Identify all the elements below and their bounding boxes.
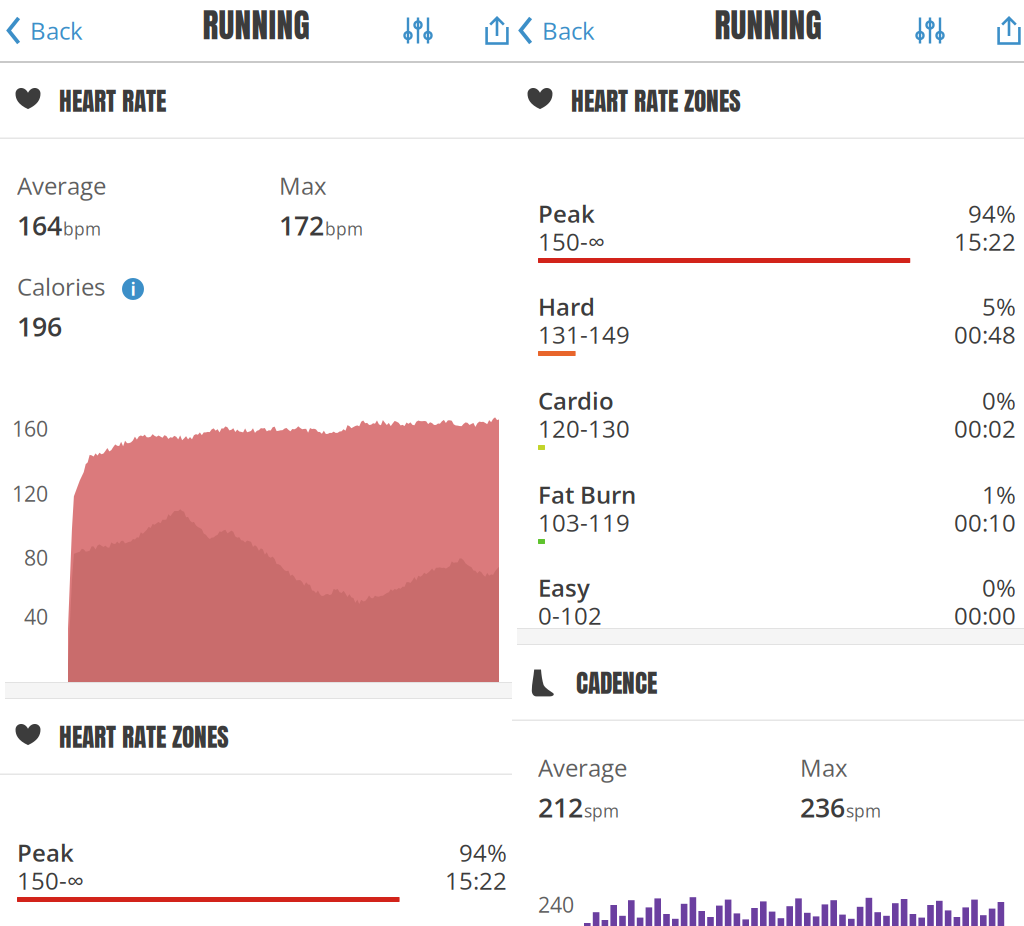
staticText: Average	[538, 751, 627, 784]
button[interactable]: Chart settings	[383, 0, 483, 61]
staticText: Calories	[17, 270, 105, 303]
staticText: HEART RATE ZONES	[59, 718, 229, 756]
button[interactable]: Back	[512, 0, 609, 61]
staticText: RUNNING	[714, 0, 821, 50]
staticText: Average	[17, 169, 106, 202]
staticText: 80	[24, 543, 48, 572]
staticText: 196	[17, 308, 62, 344]
staticText: Max	[800, 751, 848, 784]
staticText: 131-149	[538, 318, 630, 351]
staticText: Peak	[17, 836, 74, 869]
staticText: 40	[24, 602, 48, 631]
staticText: 00:10	[954, 506, 1016, 539]
button[interactable]: Share workout	[483, 0, 511, 61]
staticText: 0%	[982, 571, 1016, 604]
staticText: Easy	[538, 571, 590, 604]
staticText: 1%	[982, 478, 1016, 511]
staticText: Back	[30, 14, 83, 47]
button[interactable]: Share workout	[995, 0, 1023, 61]
staticText: Hard	[538, 290, 595, 323]
staticText: Max	[279, 169, 327, 202]
staticText: CADENCE	[576, 664, 657, 702]
staticText: 160	[12, 414, 48, 443]
staticText: Peak	[538, 197, 595, 230]
staticText: Fat Burn	[538, 478, 636, 511]
staticText: Cardio	[538, 384, 614, 417]
staticText: 150-∞	[538, 225, 605, 258]
staticText: 120	[12, 479, 48, 508]
staticText: 94%	[459, 836, 507, 869]
staticText: bpm	[325, 217, 363, 241]
staticText: 00:00	[954, 599, 1016, 632]
staticText: 00:02	[954, 412, 1016, 445]
staticText: 15:22	[954, 225, 1016, 258]
staticText: 164	[17, 207, 62, 243]
staticText: 120-130	[538, 412, 630, 445]
staticText: 15:22	[445, 864, 507, 897]
staticText: RUNNING	[202, 0, 309, 50]
staticText: i	[130, 277, 135, 301]
staticText: 172	[279, 207, 324, 243]
staticText: 240	[538, 890, 574, 919]
staticText: spm	[584, 799, 619, 823]
staticText: 103-119	[538, 506, 630, 539]
staticText: 94%	[968, 197, 1016, 230]
staticText: 0%	[982, 384, 1016, 417]
staticText: HEART RATE	[59, 82, 166, 120]
staticText: 0-102	[538, 599, 602, 632]
button[interactable]: Chart settings	[895, 0, 995, 61]
button[interactable]: Back	[0, 0, 97, 61]
staticText: HEART RATE ZONES	[571, 82, 741, 120]
staticText: bpm	[63, 217, 101, 241]
staticText: 5%	[982, 290, 1016, 323]
staticText: 212	[538, 789, 583, 825]
staticText: spm	[846, 799, 881, 823]
staticText: Back	[542, 14, 595, 47]
staticText: 00:48	[954, 318, 1016, 351]
staticText: 236	[800, 789, 845, 825]
staticText: 150-∞	[17, 864, 84, 897]
